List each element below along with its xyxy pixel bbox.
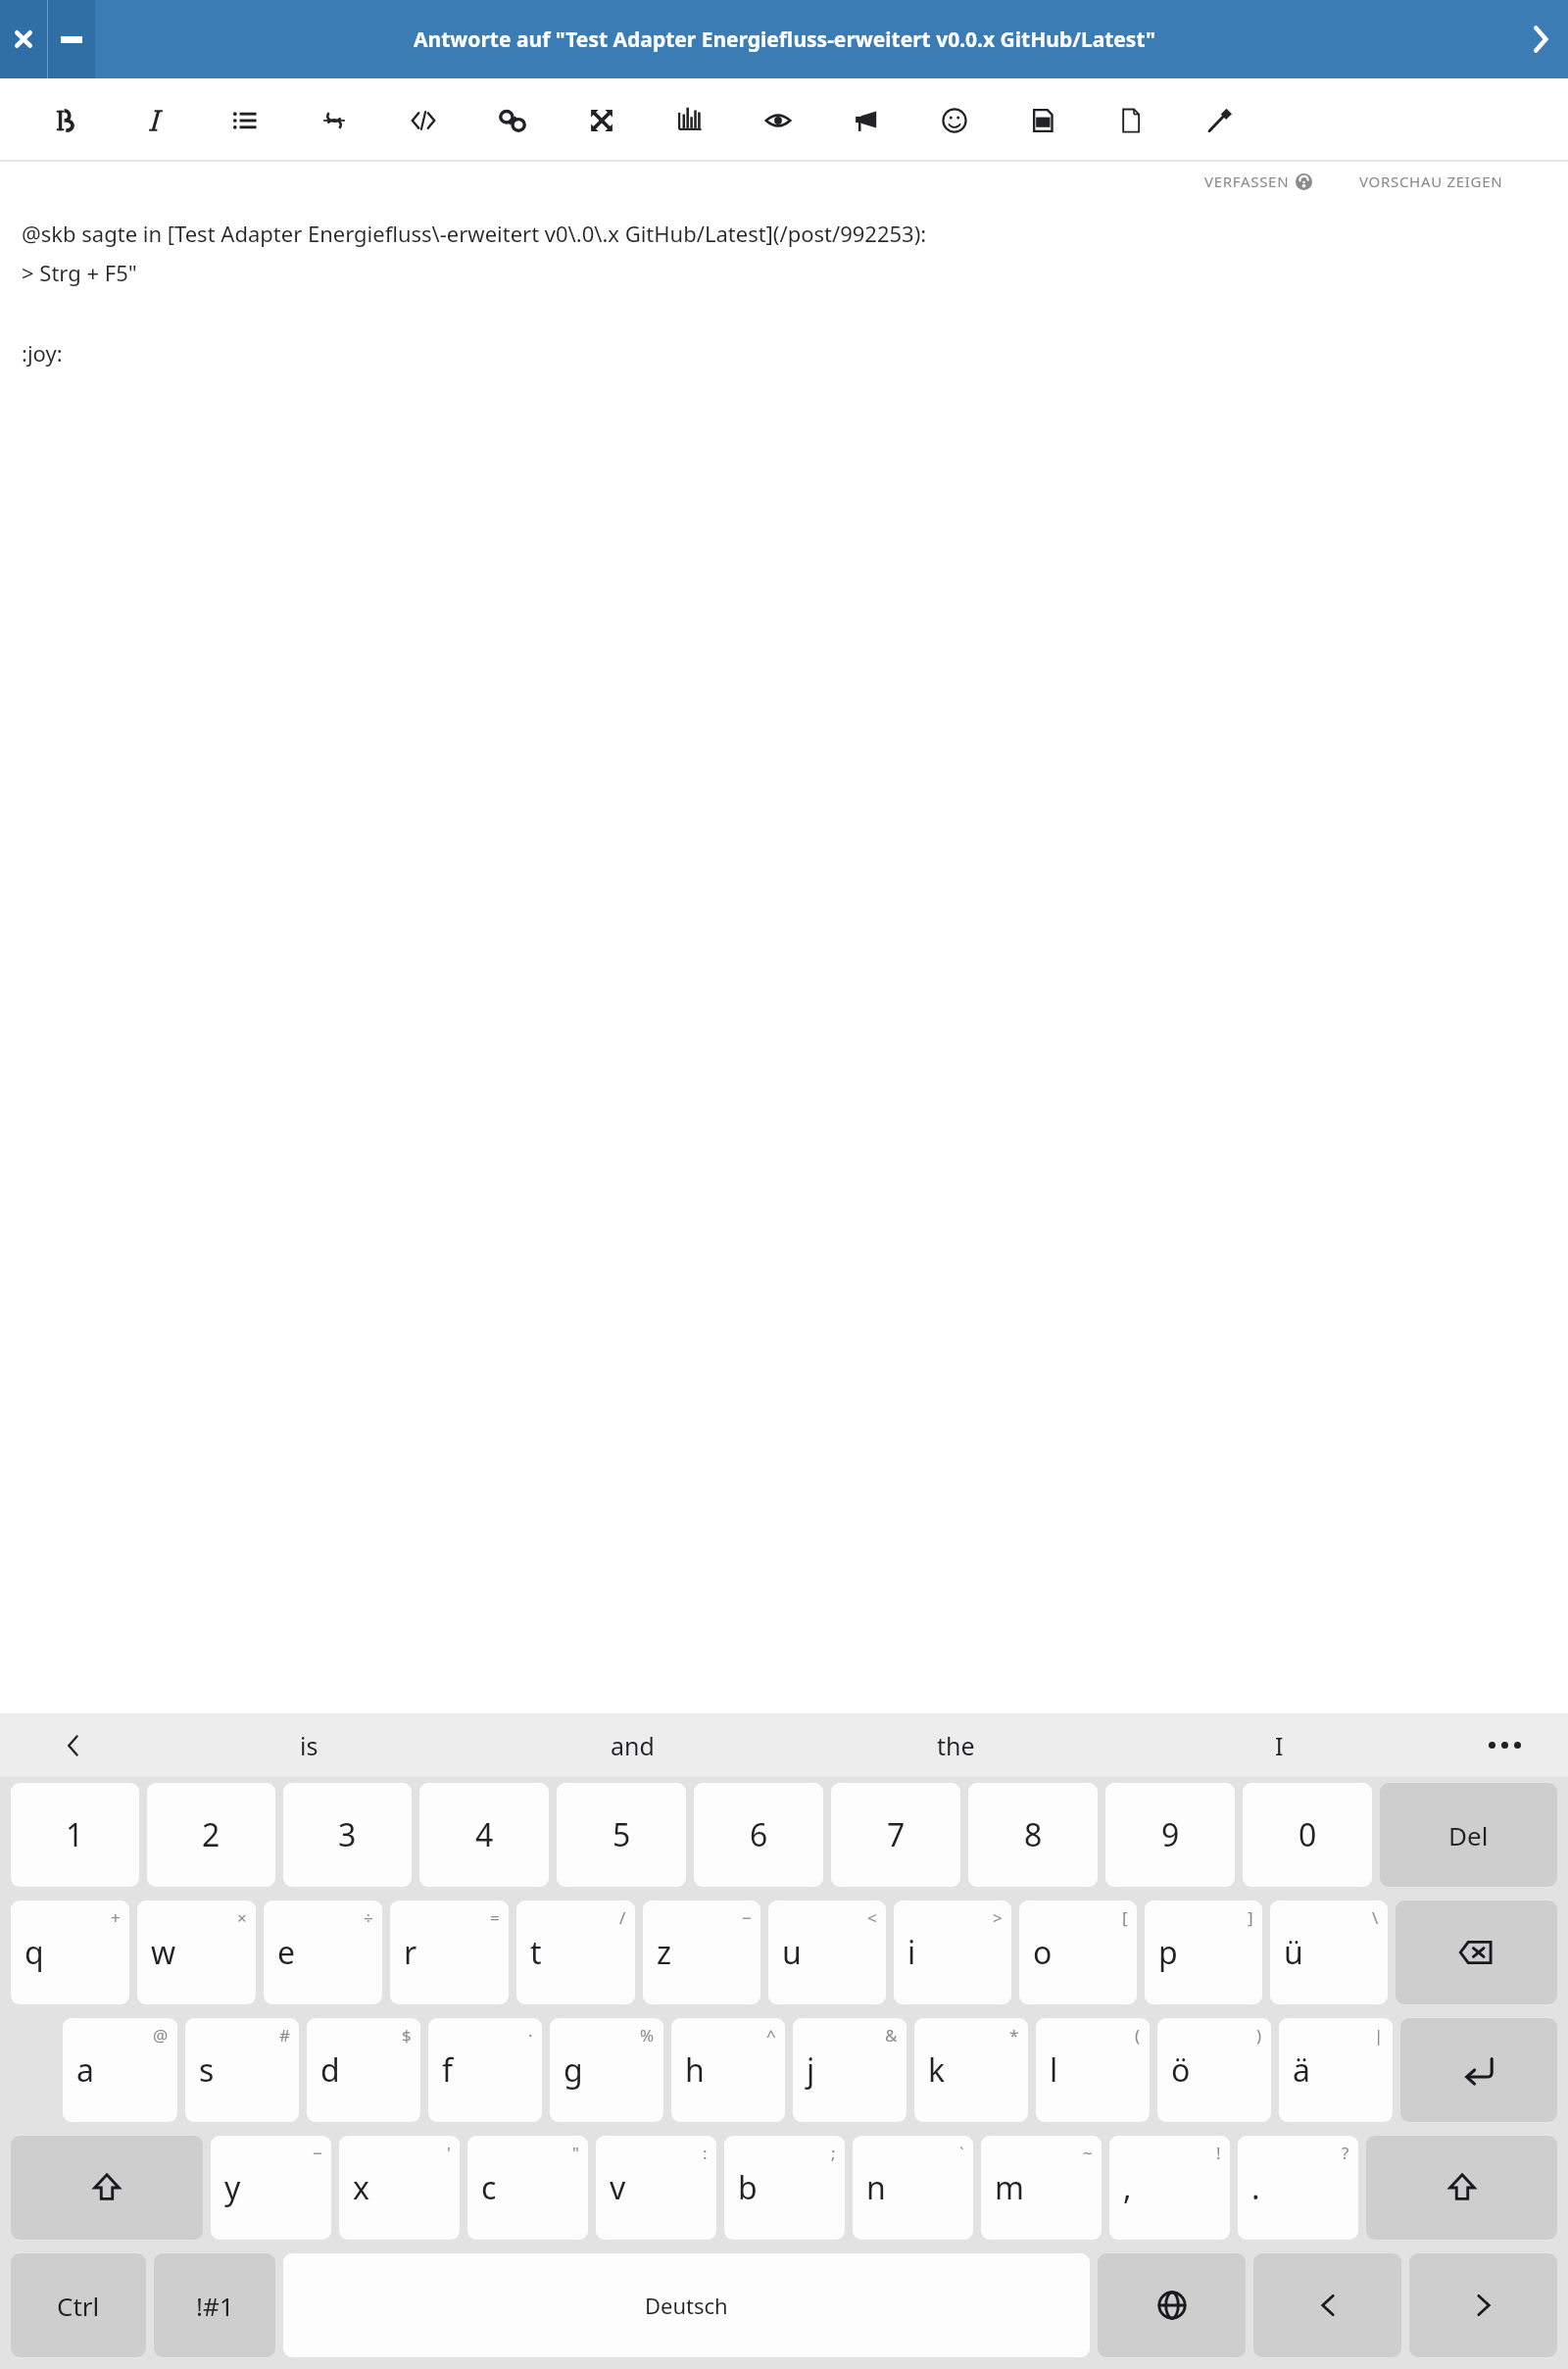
button[interactable]: the xyxy=(794,1713,1117,1777)
staticText: 3 xyxy=(338,1813,357,1856)
button[interactable]: 3 xyxy=(283,1783,412,1887)
button[interactable]: \ xyxy=(1270,1900,1388,2004)
button[interactable]: ^ xyxy=(671,2018,785,2122)
button[interactable]: Move cursor left xyxy=(1253,2253,1401,2357)
button[interactable]: ; xyxy=(724,2136,845,2240)
staticText: x xyxy=(353,2166,369,2209)
button[interactable]: !#1 xyxy=(154,2253,275,2357)
button[interactable]: Shift xyxy=(11,2136,203,2240)
button[interactable]: % xyxy=(550,2018,663,2122)
button[interactable]: 0 xyxy=(1243,1783,1372,1887)
button[interactable]: Bulleted list xyxy=(200,78,289,162)
button[interactable]: 5 xyxy=(557,1783,686,1887)
staticText: > Strg + F5" xyxy=(22,258,137,287)
button[interactable]: ' xyxy=(339,2136,460,2240)
staticText: :joy: xyxy=(22,338,63,368)
button[interactable]: ÷ xyxy=(264,1900,382,2004)
staticText: , xyxy=(1123,2166,1132,2209)
staticText: * xyxy=(1009,2024,1019,2047)
button[interactable]: Switch language xyxy=(1098,2253,1246,2357)
button[interactable]: 7 xyxy=(831,1783,960,1887)
button[interactable]: 8 xyxy=(968,1783,1098,1887)
button[interactable]: and xyxy=(470,1713,794,1777)
button[interactable]: Spoiler xyxy=(557,78,646,162)
button[interactable]: Previous suggestions xyxy=(0,1713,147,1777)
staticText: h xyxy=(685,2048,705,2092)
button[interactable]: VORSCHAU ZEIGEN xyxy=(1353,172,1509,191)
button[interactable]: Link xyxy=(467,78,557,162)
staticText: | xyxy=(1374,2024,1384,2047)
staticText: / xyxy=(619,1906,626,1929)
button[interactable]: 1 xyxy=(11,1783,139,1887)
staticText: I xyxy=(1275,1729,1284,1762)
button[interactable]: Strikethrough xyxy=(289,78,378,162)
button[interactable]: 6 xyxy=(694,1783,823,1887)
button[interactable]: Color picker xyxy=(1175,78,1263,162)
button[interactable]: × xyxy=(137,1900,256,2004)
staticText: " xyxy=(572,2142,579,2164)
button[interactable]: Del xyxy=(1380,1783,1557,1887)
button[interactable]: VERFASSEN xyxy=(1199,172,1318,191)
staticText: is xyxy=(300,1729,318,1762)
button[interactable]: 9 xyxy=(1105,1783,1235,1887)
button[interactable]: ` xyxy=(853,2136,973,2240)
button[interactable]: Enter xyxy=(1400,2018,1557,2122)
button[interactable]: − xyxy=(643,1900,760,2004)
button[interactable]: ) xyxy=(1157,2018,1271,2122)
button[interactable]: Insert image xyxy=(999,78,1087,162)
button[interactable]: 4 xyxy=(419,1783,549,1887)
button[interactable]: / xyxy=(516,1900,635,2004)
button[interactable]: Close xyxy=(0,0,47,78)
button[interactable]: Bold xyxy=(22,78,111,162)
button[interactable]: < xyxy=(768,1900,886,2004)
button[interactable]: [ xyxy=(1019,1900,1137,2004)
staticText: \ xyxy=(1372,1906,1379,1929)
staticText: r xyxy=(404,1931,417,1974)
staticText: 5 xyxy=(612,1813,631,1856)
button[interactable]: ! xyxy=(1109,2136,1230,2240)
button[interactable]: ? xyxy=(1238,2136,1358,2240)
staticText: · xyxy=(528,2024,533,2047)
button[interactable]: ~ xyxy=(981,2136,1102,2240)
button[interactable]: Shift xyxy=(1366,2136,1557,2240)
button[interactable]: $ xyxy=(307,2018,420,2122)
button[interactable]: Backspace xyxy=(1396,1900,1557,2004)
staticText: @ xyxy=(153,2024,169,2047)
button[interactable]: Move cursor right xyxy=(1409,2253,1557,2357)
button[interactable]: is xyxy=(147,1713,470,1777)
button[interactable]: Attach file xyxy=(1087,78,1175,162)
button[interactable]: 2 xyxy=(147,1783,275,1887)
button[interactable]: > xyxy=(894,1900,1011,2004)
button[interactable]: − xyxy=(211,2136,331,2240)
staticText: 8 xyxy=(1024,1813,1043,1856)
staticText: : xyxy=(703,2142,708,2164)
button[interactable]: Preview xyxy=(734,78,822,162)
button[interactable]: # xyxy=(185,2018,299,2122)
button[interactable]: Minimize xyxy=(48,0,95,78)
button[interactable]: & xyxy=(793,2018,906,2122)
button[interactable]: · xyxy=(428,2018,542,2122)
button[interactable]: Code xyxy=(378,78,467,162)
button[interactable]: | xyxy=(1279,2018,1393,2122)
button[interactable]: @ xyxy=(63,2018,177,2122)
button[interactable]: ( xyxy=(1036,2018,1150,2122)
button[interactable]: = xyxy=(390,1900,509,2004)
button[interactable]: + xyxy=(11,1900,129,2004)
button[interactable]: : xyxy=(596,2136,716,2240)
button[interactable]: ] xyxy=(1145,1900,1262,2004)
button[interactable]: Italic xyxy=(111,78,200,162)
staticText: . xyxy=(1251,2166,1260,2209)
button[interactable]: Send xyxy=(1513,0,1568,78)
button[interactable]: * xyxy=(914,2018,1028,2122)
staticText: n xyxy=(866,2166,886,2209)
button[interactable]: I xyxy=(1117,1713,1441,1777)
button[interactable]: Deutsch xyxy=(283,2253,1090,2357)
button[interactable]: Poll xyxy=(646,78,734,162)
button[interactable]: Ctrl xyxy=(11,2253,146,2357)
staticText: y xyxy=(224,2166,241,2209)
button[interactable]: More options xyxy=(1441,1713,1568,1777)
button[interactable]: " xyxy=(467,2136,588,2240)
button[interactable]: Emoji xyxy=(910,78,999,162)
staticText: − xyxy=(313,2142,322,2164)
button[interactable]: Mention xyxy=(822,78,910,162)
